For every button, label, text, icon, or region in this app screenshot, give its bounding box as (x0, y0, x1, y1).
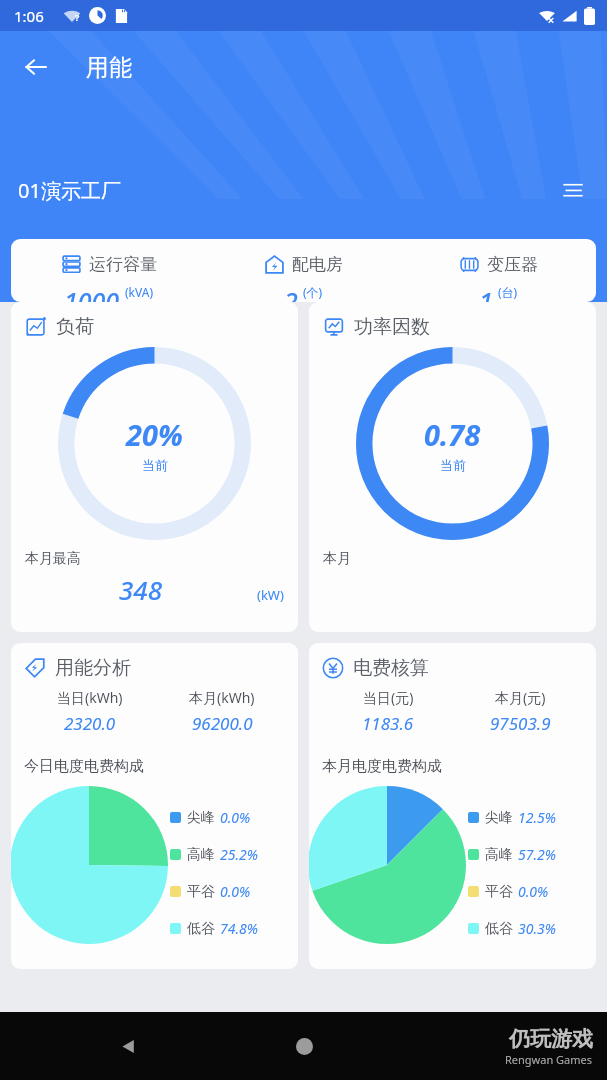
staticText: 尖峰 (485, 809, 513, 827)
staticText: 01演示工厂 (18, 177, 121, 204)
staticText: 当前 (440, 457, 466, 473)
staticText: (个) (303, 284, 323, 299)
staticText: 当日(元) (363, 688, 414, 707)
staticText: 配电房 (292, 254, 343, 275)
button[interactable]: 运行容量 (11, 239, 596, 302)
button[interactable]: 功率因数 (309, 302, 596, 632)
staticText: 2320.0 (64, 712, 116, 735)
staticText: 功率因数 (354, 315, 430, 339)
button[interactable]: Menu (553, 170, 593, 210)
staticText: 30.3% (518, 919, 556, 938)
staticText: 1 (479, 284, 493, 302)
staticText: 当前 (142, 457, 168, 473)
button[interactable]: 用能分析 (11, 643, 298, 969)
staticText: 当日(kWh) (57, 688, 123, 707)
staticText: 电费核算 (353, 656, 429, 680)
staticText: 348 (119, 572, 162, 607)
staticText: (台) (498, 284, 518, 299)
staticText: 25.2% (220, 845, 258, 864)
staticText: 低谷 (187, 920, 215, 938)
staticText: 本月(kWh) (189, 688, 255, 707)
staticText: 96200.0 (192, 712, 253, 735)
staticText: 尖峰 (187, 809, 215, 827)
staticText: 本月最高 (25, 550, 81, 568)
staticText: 57.2% (518, 845, 556, 864)
staticText: 用能 (86, 53, 132, 82)
staticText: 2 (284, 284, 298, 302)
staticText: 1:06 (14, 6, 44, 26)
staticText: 今日电度电费构成 (24, 757, 144, 776)
staticText: 负荷 (56, 315, 94, 339)
button[interactable]: Home (281, 1023, 327, 1069)
staticText: 本月电度电费构成 (322, 757, 442, 776)
staticText: ? (75, 11, 80, 23)
staticText: 1183.6 (362, 712, 414, 735)
staticText: (kVA) (125, 284, 153, 299)
staticText: 本月 (323, 550, 351, 568)
staticText: Rengwan Games (505, 1052, 593, 1067)
staticText: 0.78 (424, 415, 481, 454)
staticText: 97503.9 (490, 712, 551, 735)
staticText: 0.0% (518, 882, 549, 901)
staticText: 用能分析 (55, 656, 131, 680)
staticText: 平谷 (485, 883, 513, 901)
staticText: 0.0% (220, 882, 251, 901)
staticText: 74.8% (220, 919, 258, 938)
button[interactable]: 电费核算 (309, 643, 596, 969)
staticText: 0.0% (220, 808, 251, 827)
staticText: 高峰 (485, 846, 513, 864)
button[interactable]: 负荷 (11, 302, 298, 632)
staticText: 平谷 (187, 883, 215, 901)
staticText: (kW) (257, 586, 284, 604)
staticText: 20% (126, 415, 183, 454)
staticText: 高峰 (187, 846, 215, 864)
staticText: 本月(元) (495, 688, 546, 707)
staticText: 运行容量 (89, 254, 157, 275)
staticText: 12.5% (518, 808, 556, 827)
button[interactable]: Back (105, 1023, 151, 1069)
staticText: 仍玩游戏 (509, 1026, 593, 1052)
button[interactable]: Back (14, 45, 58, 89)
staticText: 1000 (64, 284, 120, 302)
staticText: 变压器 (487, 254, 538, 275)
staticText: 低谷 (485, 920, 513, 938)
